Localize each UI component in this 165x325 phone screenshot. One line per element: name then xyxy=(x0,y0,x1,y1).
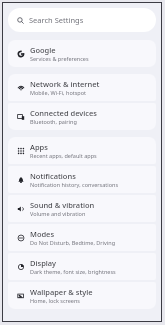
staticText: Recent apps, default apps xyxy=(30,152,97,159)
staticText: Services & preferences xyxy=(30,55,89,62)
staticText: Notification history, conversations xyxy=(30,181,119,188)
button[interactable]: Search Settings xyxy=(8,8,156,32)
staticText: Mobile, Wi-Fi, hotspot xyxy=(30,89,87,96)
staticText: Network & internet xyxy=(30,79,100,89)
staticText: Notifications xyxy=(30,171,76,181)
button[interactable]: Connected devices xyxy=(8,103,156,130)
staticText: Volume and vibration xyxy=(30,210,86,217)
staticText: Search Settings xyxy=(29,15,84,25)
staticText: Home, lock screens xyxy=(30,297,80,304)
staticText: Wallpaper & style xyxy=(30,287,93,297)
staticText: Google xyxy=(30,45,56,55)
button[interactable]: Wallpaper & style xyxy=(8,282,156,309)
staticText: Bluetooth, pairing xyxy=(30,118,77,125)
button[interactable]: Sound & vibration xyxy=(8,195,156,222)
button[interactable]: Modes xyxy=(8,224,156,251)
button[interactable]: Network & internet xyxy=(8,74,156,101)
staticText: Display xyxy=(30,258,57,268)
staticText: Connected devices xyxy=(30,108,97,118)
staticText: Sound & vibration xyxy=(30,200,95,210)
staticText: Apps xyxy=(30,142,48,152)
staticText: Modes xyxy=(30,229,55,239)
staticText: Do Not Disturb, Bedtime, Driving xyxy=(30,239,116,246)
button[interactable]: Apps xyxy=(8,137,156,164)
button[interactable]: Display xyxy=(8,253,156,280)
button[interactable]: Google xyxy=(8,40,156,67)
staticText: Dark theme, font size, brightness xyxy=(30,268,116,275)
button[interactable]: Notifications xyxy=(8,166,156,193)
